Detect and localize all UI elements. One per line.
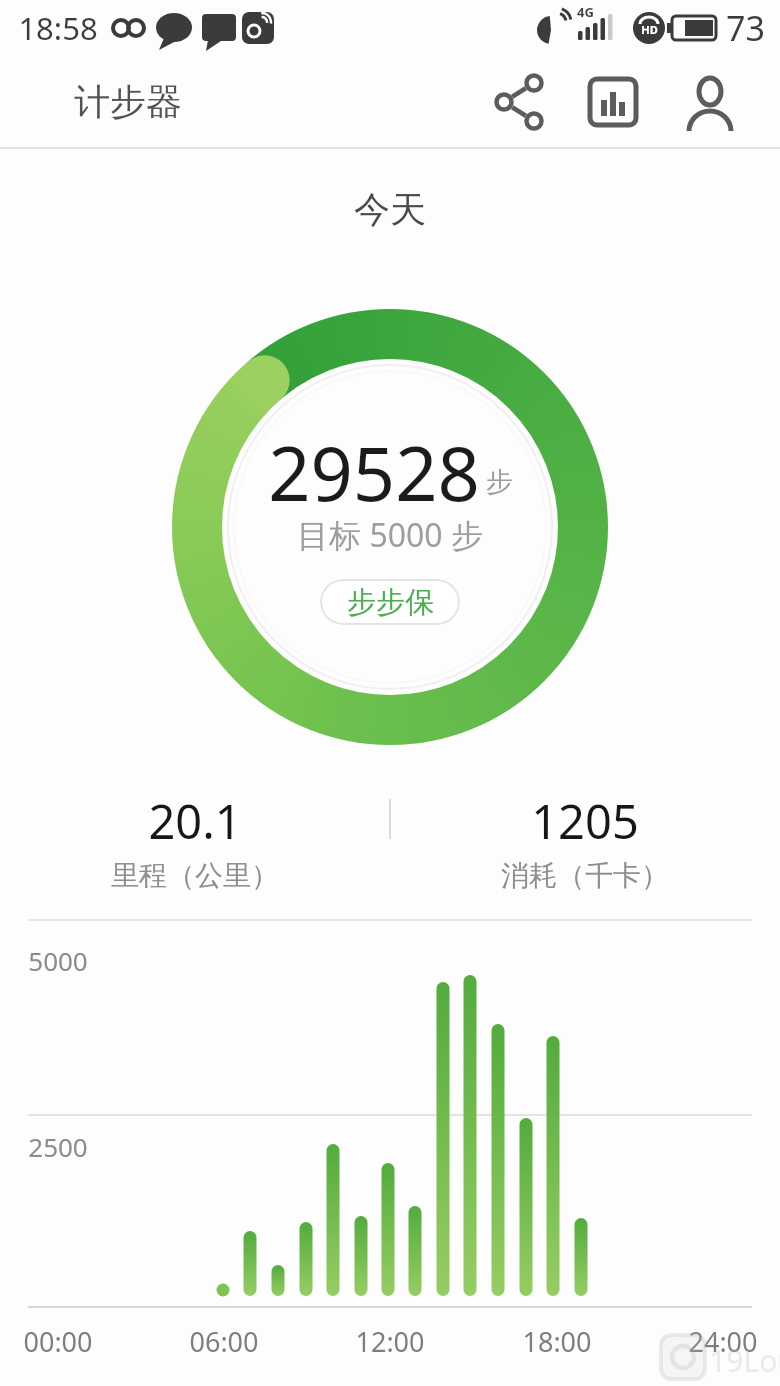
staticText: 今天 [354,187,426,232]
staticText: 步步保 [347,584,434,621]
staticText: HD [641,22,658,37]
staticText: 00:00 [23,1323,93,1359]
staticText: 2500 [28,1129,88,1164]
staticText: 18:58 [18,7,98,49]
staticText: 里程（公里） [111,858,279,893]
button[interactable] [581,70,645,134]
staticText: 06:00 [189,1323,259,1359]
staticText: 4G [577,3,594,21]
button[interactable]: 步步保 [320,579,460,625]
staticText: 73 [726,5,765,51]
staticText: 步 [486,465,513,499]
staticText: 计步器 [74,79,182,124]
staticText: 消耗（千卡） [501,858,669,893]
staticText: 5000 [28,943,88,978]
staticText: 29528 [268,422,480,512]
staticText: 18:00 [522,1323,592,1359]
staticText: 24:00 [688,1323,758,1359]
button[interactable] [678,70,742,134]
staticText: 12:00 [355,1323,425,1359]
staticText: 19Lou [709,1340,780,1381]
staticText: 1205 [531,789,639,853]
staticText: 20.1 [148,789,242,853]
staticText: 目标 5000 步 [297,513,483,553]
button[interactable] [489,70,553,134]
